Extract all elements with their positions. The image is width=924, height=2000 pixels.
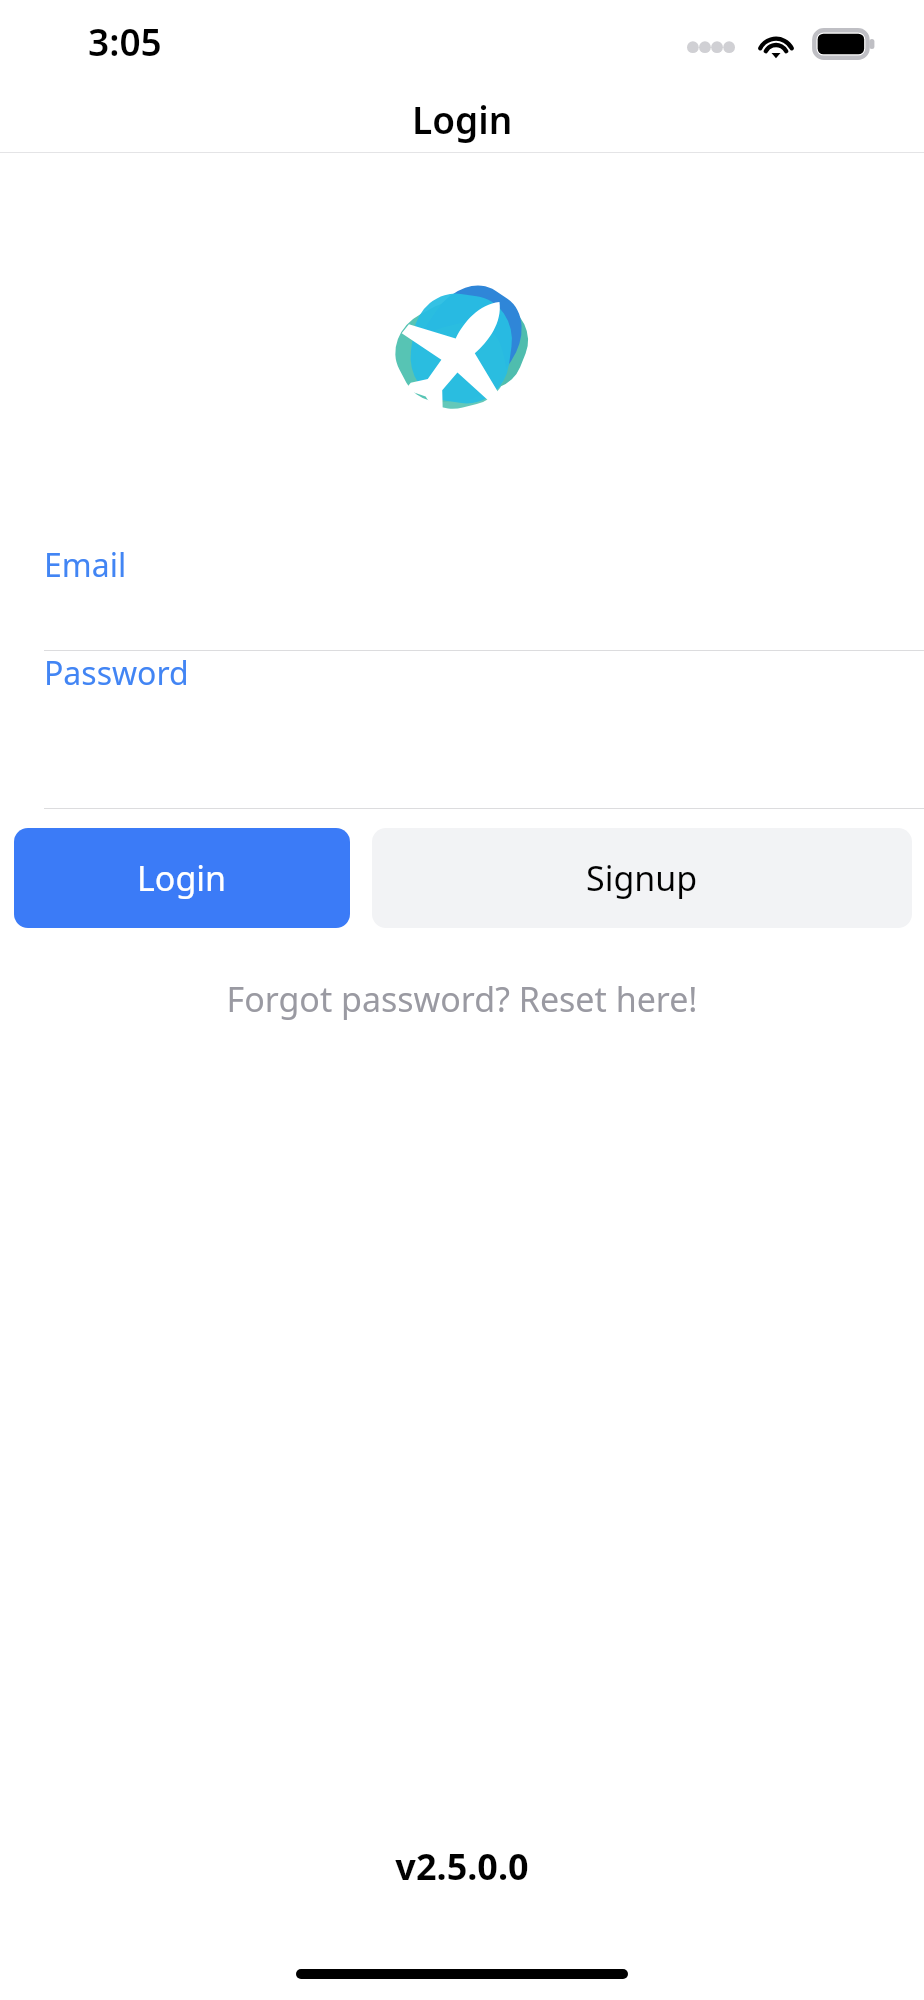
staticText: Password (44, 651, 189, 695)
staticText: 3:05 (88, 16, 162, 66)
staticText: Forgot password? Reset here! (226, 976, 698, 1022)
staticText: Email (44, 543, 127, 587)
button[interactable]: Email (0, 543, 924, 651)
staticText: Signup (586, 855, 698, 901)
button[interactable]: Password (0, 651, 924, 809)
button[interactable]: Signup (372, 828, 912, 928)
button[interactable]: Login (14, 828, 350, 928)
staticText: v2.5.0.0 (0, 1842, 924, 1891)
button[interactable]: Forgot password? Reset here! (0, 976, 924, 1022)
staticText: Login (412, 94, 513, 144)
staticText: Login (137, 855, 227, 901)
